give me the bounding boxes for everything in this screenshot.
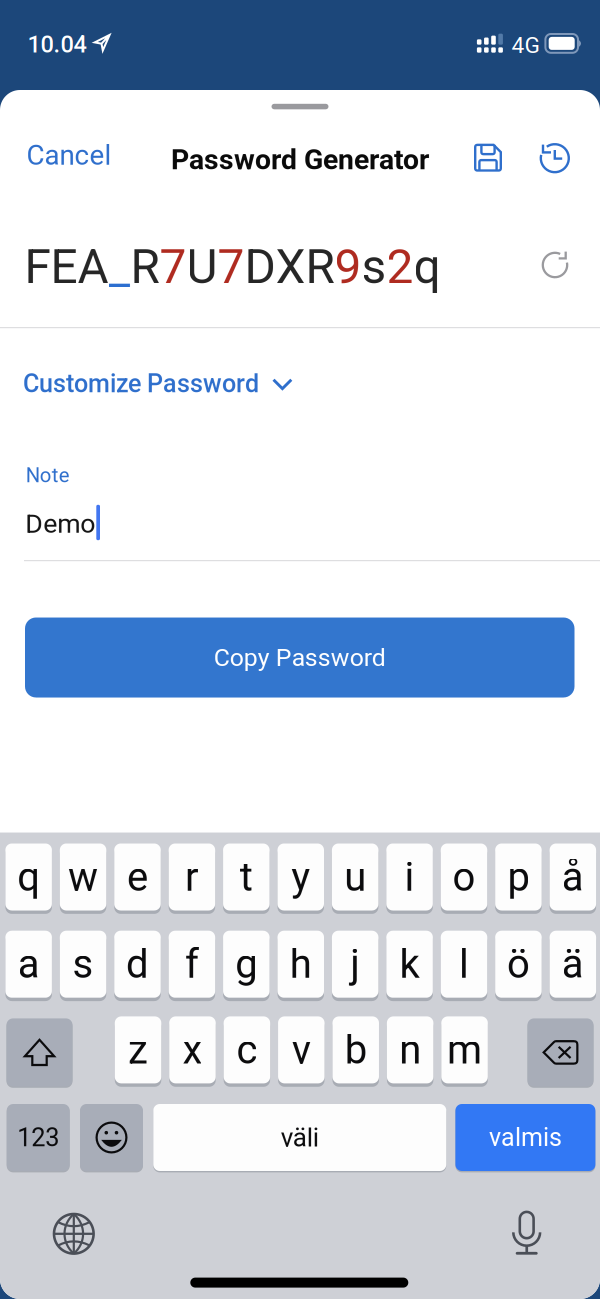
- button[interactable]: 123: [7, 1104, 70, 1171]
- button[interactable]: w: [60, 845, 106, 912]
- staticText: ä: [562, 941, 584, 988]
- staticText: g: [235, 941, 257, 988]
- button[interactable]: väli: [153, 1104, 446, 1171]
- staticText: DXR: [244, 239, 334, 295]
- staticText: t: [240, 854, 253, 900]
- staticText: d: [126, 941, 149, 988]
- button[interactable]: i: [386, 845, 433, 912]
- button[interactable]: j: [332, 933, 378, 1000]
- button[interactable]: f: [169, 933, 215, 1000]
- staticText: Demo: [25, 508, 95, 539]
- button[interactable]: Copy Password: [25, 617, 574, 697]
- button[interactable]: g: [223, 933, 270, 1000]
- button[interactable]: Switch keyboard: [53, 1213, 95, 1255]
- staticText: 7: [217, 239, 244, 295]
- staticText: o: [452, 854, 475, 900]
- staticText: v: [292, 1026, 311, 1073]
- button[interactable]: u: [332, 845, 378, 912]
- staticText: valmis: [489, 1123, 562, 1152]
- button[interactable]: l: [441, 933, 487, 1000]
- button[interactable]: t: [223, 845, 270, 912]
- button[interactable]: c: [224, 1018, 270, 1085]
- staticText: i: [405, 854, 415, 900]
- staticText: 7: [159, 239, 186, 295]
- staticText: p: [507, 854, 529, 900]
- staticText: q: [413, 239, 440, 295]
- button[interactable]: Regenerate password: [541, 251, 568, 278]
- button[interactable]: Dictate: [512, 1211, 542, 1255]
- staticText: j: [350, 941, 360, 988]
- button[interactable]: ä: [550, 933, 596, 1000]
- staticText: y: [291, 854, 310, 900]
- staticText: b: [345, 1026, 367, 1073]
- staticText: Copy Password: [214, 643, 386, 672]
- staticText: n: [399, 1026, 421, 1073]
- staticText: ö: [507, 941, 530, 988]
- staticText: m: [447, 1026, 482, 1073]
- staticText: å: [562, 854, 584, 900]
- staticText: väli: [281, 1122, 319, 1153]
- button[interactable]: Delete: [527, 1018, 593, 1086]
- button[interactable]: q: [5, 845, 52, 912]
- button[interactable]: ö: [495, 933, 542, 1000]
- button[interactable]: o: [441, 845, 487, 912]
- staticText: s: [361, 239, 386, 295]
- staticText: z: [128, 1026, 148, 1073]
- button[interactable]: d: [114, 933, 161, 1000]
- button[interactable]: Emoji: [80, 1104, 143, 1171]
- staticText: Note: [26, 463, 70, 487]
- staticText: u: [344, 854, 366, 900]
- staticText: Cancel: [26, 139, 111, 171]
- button[interactable]: s: [60, 933, 106, 1000]
- staticText: 4G: [511, 32, 539, 59]
- button[interactable]: n: [387, 1018, 433, 1085]
- button[interactable]: b: [332, 1018, 379, 1085]
- button[interactable]: a: [5, 933, 52, 1000]
- staticText: c: [236, 1026, 257, 1073]
- staticText: f: [185, 941, 199, 988]
- button[interactable]: r: [169, 845, 215, 912]
- button[interactable]: k: [386, 933, 433, 1000]
- staticText: w: [68, 854, 98, 900]
- staticText: FEA: [24, 239, 108, 295]
- staticText: r: [185, 854, 199, 900]
- button[interactable]: h: [277, 933, 324, 1000]
- button[interactable]: valmis: [455, 1104, 595, 1171]
- staticText: h: [290, 941, 312, 988]
- button[interactable]: y: [277, 845, 324, 912]
- button[interactable]: å: [550, 845, 596, 912]
- staticText: Password Generator: [171, 143, 429, 176]
- button[interactable]: x: [169, 1018, 216, 1085]
- staticText: 2: [386, 239, 413, 295]
- button[interactable]: Save: [474, 144, 502, 172]
- staticText: Customize Password: [23, 369, 259, 398]
- staticText: q: [17, 854, 40, 900]
- button[interactable]: Cancel: [19, 130, 118, 180]
- staticText: a: [18, 941, 40, 988]
- button[interactable]: e: [114, 845, 161, 912]
- staticText: U: [186, 239, 217, 295]
- staticText: 123: [17, 1123, 59, 1152]
- staticText: s: [73, 941, 94, 988]
- button[interactable]: v: [278, 1018, 325, 1085]
- staticText: 9: [334, 239, 361, 295]
- button[interactable]: z: [115, 1018, 161, 1085]
- staticText: x: [182, 1026, 202, 1073]
- staticText: _: [108, 239, 130, 295]
- button[interactable]: History: [540, 142, 572, 174]
- staticText: e: [127, 854, 148, 900]
- button[interactable]: m: [441, 1018, 488, 1085]
- staticText: k: [400, 941, 420, 988]
- staticText: R: [130, 239, 159, 295]
- staticText: 10.04: [27, 30, 86, 58]
- staticText: l: [459, 941, 469, 988]
- button[interactable]: p: [495, 845, 542, 912]
- button[interactable]: Customize Password: [19, 359, 297, 408]
- button[interactable]: Shift: [6, 1018, 72, 1086]
